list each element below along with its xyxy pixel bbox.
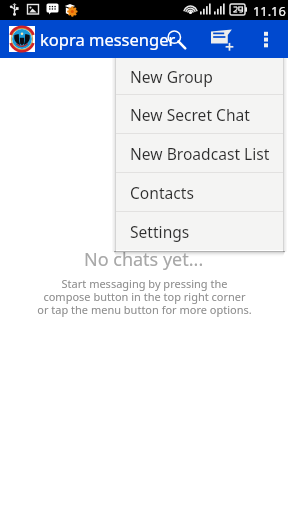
staticText: New Group (130, 66, 213, 87)
button[interactable]: New Group (116, 58, 283, 94)
staticText: No chats yet... (84, 247, 204, 272)
staticText: Contacts (130, 182, 194, 203)
button[interactable]: New message (204, 20, 242, 58)
staticText: New Broadcast List (130, 143, 270, 164)
staticText: Start messaging by pressing the compose … (37, 276, 252, 318)
button[interactable]: More options (247, 20, 285, 58)
staticText: 11.16 (253, 2, 286, 19)
button[interactable]: Search (157, 20, 195, 58)
button[interactable]: New Secret Chat (116, 95, 283, 133)
staticText: kopra messenger (40, 28, 176, 50)
staticText: New Secret Chat (130, 104, 250, 125)
button[interactable]: Settings (116, 212, 283, 250)
button[interactable]: New Broadcast List (116, 134, 283, 172)
staticText: Settings (130, 221, 190, 242)
button[interactable]: Contacts (116, 173, 283, 211)
